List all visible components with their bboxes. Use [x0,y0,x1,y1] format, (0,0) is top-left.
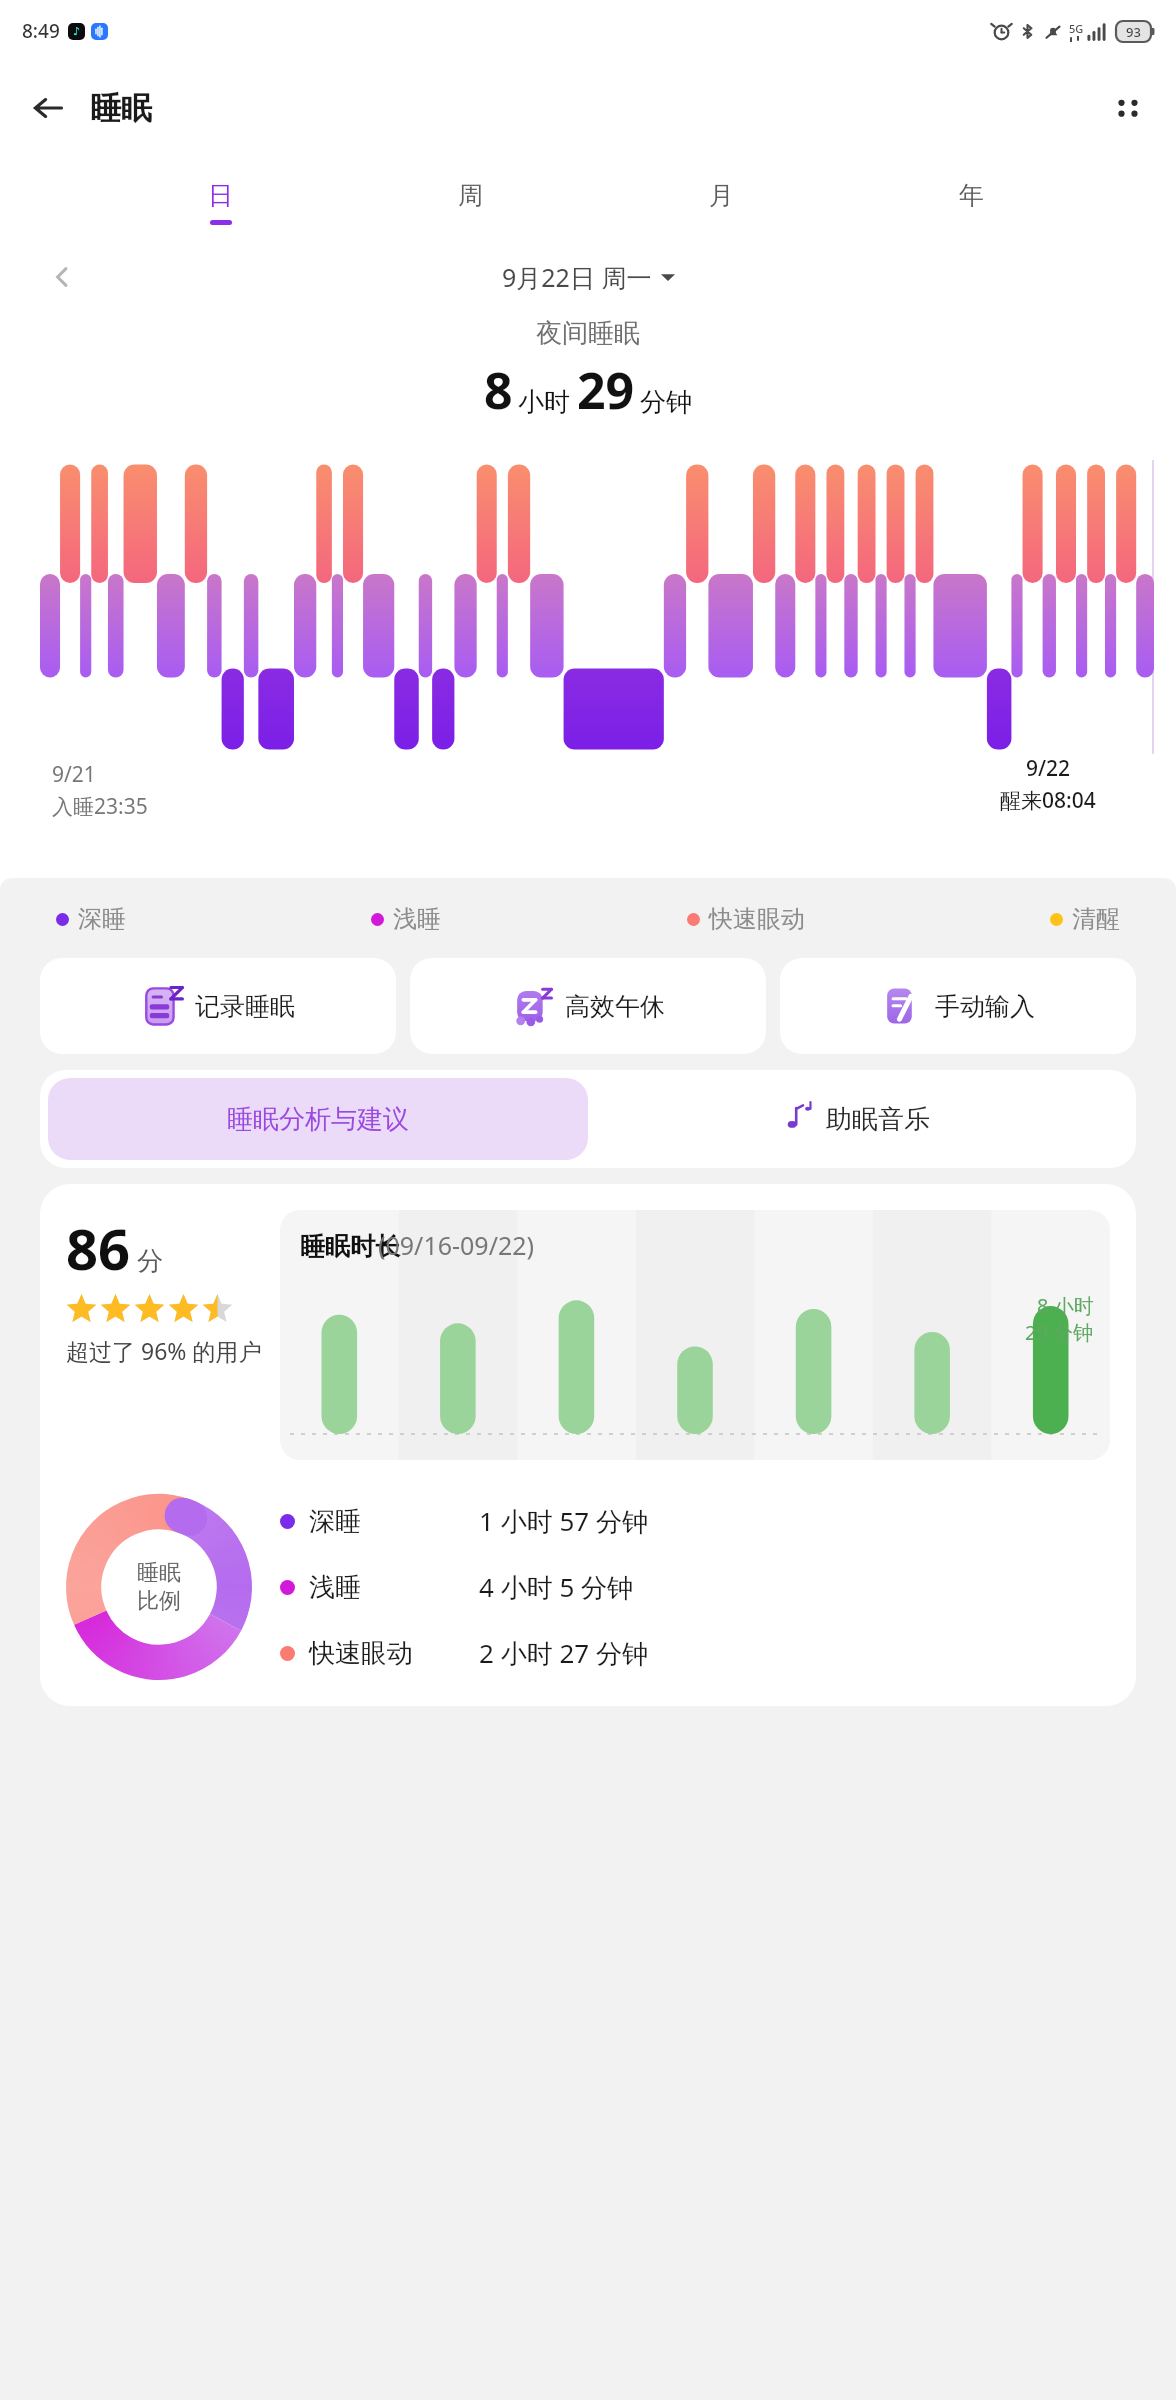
button[interactable]: 浅睡 [280,1569,1110,1605]
button[interactable]: 助眠音乐 [588,1078,1128,1160]
staticText: 睡眠分析与建议 [227,1103,409,1136]
button[interactable]: 深睡 [280,1503,1110,1539]
staticText: 深睡 [78,904,126,934]
staticText: (09/16-09/22) [300,1228,535,1262]
button[interactable]: 快速眼动 [280,1635,1110,1671]
staticText: 睡眠 [137,1559,181,1587]
staticText: 9/21 [52,760,96,789]
staticText: 日 [208,180,233,211]
staticText: 助眠音乐 [826,1103,930,1136]
staticText: 浅睡 [309,1571,459,1604]
staticText: 29 分钟 [1025,1319,1094,1346]
staticText: 记录睡眠 [195,991,295,1022]
button[interactable]: 记录睡眠 [40,958,396,1054]
button[interactable]: Scroll [1086,806,1142,862]
staticText: 2 小时 27 分钟 [479,1635,648,1671]
staticText: 分 [137,1245,163,1278]
staticText: 4 小时 5 分钟 [479,1569,634,1605]
staticText: 快速眼动 [309,1637,459,1670]
staticText: 手动输入 [935,991,1035,1022]
staticText: 入睡23:35 [52,792,148,821]
staticText: 小时 [518,386,570,419]
staticText: 周 [458,180,483,211]
staticText: 1 小时 57 分钟 [479,1503,648,1539]
staticText: 分钟 [640,386,692,419]
staticText: 高效午休 [565,991,665,1022]
staticText: 超过了 96% 的用户 [66,1335,262,1366]
button[interactable]: Previous day [38,253,86,301]
staticText: 5G [1069,21,1084,36]
staticText: 93 [1126,23,1141,41]
button[interactable]: 睡眠分析与建议 [48,1078,588,1160]
staticText: 8 [484,356,513,424]
button[interactable]: 年 [947,176,996,229]
staticText: 年 [959,180,984,211]
staticText: 睡眠时长 [300,1228,407,1262]
staticText: 29 [577,356,635,424]
staticText: 8:49 [22,18,60,44]
button[interactable]: Back [20,80,76,136]
staticText: 快速眼动 [709,904,805,934]
staticText: 9/22 [1026,754,1071,783]
staticText: 睡眠 [90,89,152,128]
button[interactable]: 手动输入 [780,958,1136,1054]
staticText: 86 [66,1210,131,1286]
staticText: 深睡 [309,1505,459,1538]
staticText: 8 小时 [1037,1292,1094,1319]
staticText: 9月22日 周一 [502,260,652,294]
staticText: 夜间睡眠 [536,317,640,350]
button[interactable]: 9月22日 周一 [494,256,683,298]
button[interactable]: 月 [697,176,746,229]
staticText: 醒来08:04 [1000,786,1096,815]
staticText: ♪ [73,25,81,38]
staticText: 清醒 [1072,904,1120,934]
button[interactable]: 高效午休 [410,958,766,1054]
button[interactable]: 周 [446,176,495,229]
staticText: 浅睡 [393,904,441,934]
button[interactable]: 日 [196,176,245,229]
staticText: 比例 [137,1587,181,1615]
button[interactable]: More options [1100,80,1156,136]
staticText: 月 [709,180,734,211]
